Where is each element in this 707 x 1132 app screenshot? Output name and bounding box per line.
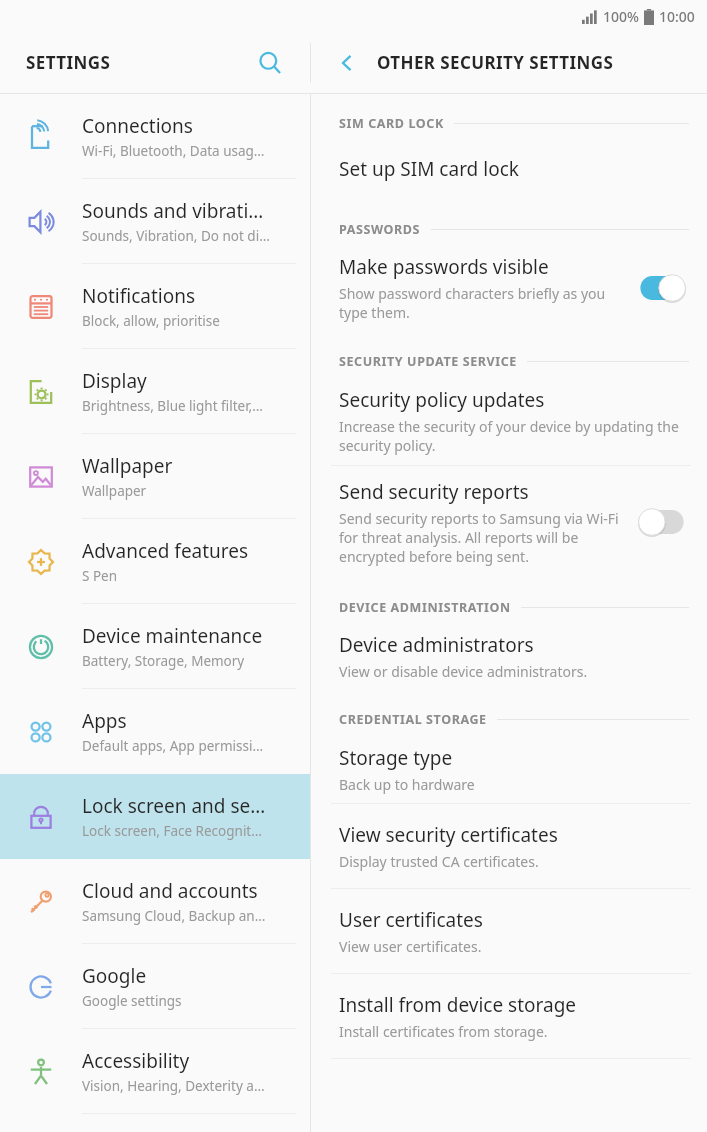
button[interactable]: Make passwords visible bbox=[311, 244, 707, 332]
button[interactable]: Set up SIM card lock bbox=[311, 138, 707, 200]
staticText: Apps bbox=[82, 708, 127, 734]
staticText: S Pen bbox=[82, 567, 118, 585]
staticText: Google bbox=[82, 963, 147, 989]
staticText: Display trusted CA certificates. bbox=[339, 852, 539, 871]
staticText: Battery, Storage, Memory bbox=[82, 652, 245, 670]
button[interactable]: Advanced features bbox=[0, 519, 310, 604]
staticText: Storage type bbox=[339, 745, 453, 771]
staticText: Security policy updates bbox=[339, 387, 545, 413]
staticText: 100% bbox=[603, 7, 639, 26]
staticText: Connections bbox=[82, 113, 193, 139]
button[interactable]: Cloud and accounts bbox=[0, 859, 310, 944]
button[interactable]: Send security reports bbox=[311, 466, 707, 578]
staticText: Sounds, Vibration, Do not di… bbox=[82, 227, 270, 245]
staticText: Device maintenance bbox=[82, 623, 263, 649]
staticText: Block, allow, prioritise bbox=[82, 312, 220, 330]
staticText: Samsung Cloud, Backup an… bbox=[82, 907, 266, 925]
staticText: Cloud and accounts bbox=[82, 878, 258, 904]
staticText: Sounds and vibrati… bbox=[82, 198, 264, 224]
button[interactable]: Display bbox=[0, 349, 310, 434]
staticText: SETTINGS bbox=[26, 51, 111, 74]
staticText: DEVICE ADMINISTRATION bbox=[339, 599, 511, 616]
staticText: Lock screen and se… bbox=[82, 793, 266, 819]
button[interactable]: Apps bbox=[0, 689, 310, 774]
staticText: View or disable device administrators. bbox=[339, 662, 588, 681]
staticText: OTHER SECURITY SETTINGS bbox=[377, 51, 614, 74]
staticText: Vision, Hearing, Dexterity a… bbox=[82, 1077, 265, 1095]
button[interactable]: Toggle on bbox=[635, 271, 689, 305]
button[interactable]: Security policy updates bbox=[311, 376, 707, 466]
staticText: SECURITY UPDATE SERVICE bbox=[339, 353, 517, 370]
staticText: Show password characters briefly as you … bbox=[339, 284, 625, 322]
button[interactable]: Toggle off bbox=[635, 505, 689, 539]
staticText: User certificates bbox=[339, 907, 483, 933]
button[interactable]: Connections bbox=[0, 94, 310, 179]
staticText: Advanced features bbox=[82, 538, 249, 564]
staticText: SIM CARD LOCK bbox=[339, 115, 444, 132]
staticText: 10:00 bbox=[659, 7, 695, 26]
staticText: Lock screen, Face Recognit… bbox=[82, 822, 262, 840]
staticText: View user certificates. bbox=[339, 937, 482, 956]
button[interactable]: User certificates bbox=[311, 889, 707, 974]
staticText: Default apps, App permissi… bbox=[82, 737, 264, 755]
staticText: Display bbox=[82, 368, 147, 394]
staticText: Notifications bbox=[82, 283, 196, 309]
button[interactable]: Google bbox=[0, 944, 310, 1029]
button[interactable]: View security certificates bbox=[311, 804, 707, 889]
staticText: View security certificates bbox=[339, 822, 558, 848]
button[interactable]: Notifications bbox=[0, 264, 310, 349]
staticText: Wallpaper bbox=[82, 453, 173, 479]
button[interactable]: Lock screen and se… bbox=[0, 774, 310, 859]
staticText: Make passwords visible bbox=[339, 254, 549, 280]
staticText: Send security reports bbox=[339, 479, 529, 505]
button[interactable]: Wallpaper bbox=[0, 434, 310, 519]
staticText: Install certificates from storage. bbox=[339, 1022, 548, 1041]
staticText: Back up to hardware bbox=[339, 775, 475, 794]
button[interactable]: Device administrators bbox=[311, 622, 707, 690]
button[interactable]: Back bbox=[325, 41, 369, 85]
staticText: CREDENTIAL STORAGE bbox=[339, 711, 487, 728]
button[interactable]: Storage type bbox=[311, 734, 707, 804]
staticText: Device administrators bbox=[339, 632, 534, 658]
staticText: Accessibility bbox=[82, 1048, 190, 1074]
staticText: Install from device storage bbox=[339, 992, 577, 1018]
button[interactable]: Accessibility bbox=[0, 1029, 310, 1114]
staticText: Increase the security of your device by … bbox=[339, 417, 679, 455]
button[interactable]: Search bbox=[248, 41, 292, 85]
button[interactable]: Sounds and vibrati… bbox=[0, 179, 310, 264]
staticText: Brightness, Blue light filter,… bbox=[82, 397, 263, 415]
staticText: Wallpaper bbox=[82, 482, 147, 500]
button[interactable]: Install from device storage bbox=[311, 974, 707, 1059]
button[interactable]: Device maintenance bbox=[0, 604, 310, 689]
staticText: Google settings bbox=[82, 992, 182, 1010]
staticText: Wi-Fi, Bluetooth, Data usag… bbox=[82, 142, 265, 160]
staticText: PASSWORDS bbox=[339, 221, 421, 238]
staticText: Send security reports to Samsung via Wi-… bbox=[339, 509, 625, 566]
staticText: Set up SIM card lock bbox=[339, 156, 519, 182]
